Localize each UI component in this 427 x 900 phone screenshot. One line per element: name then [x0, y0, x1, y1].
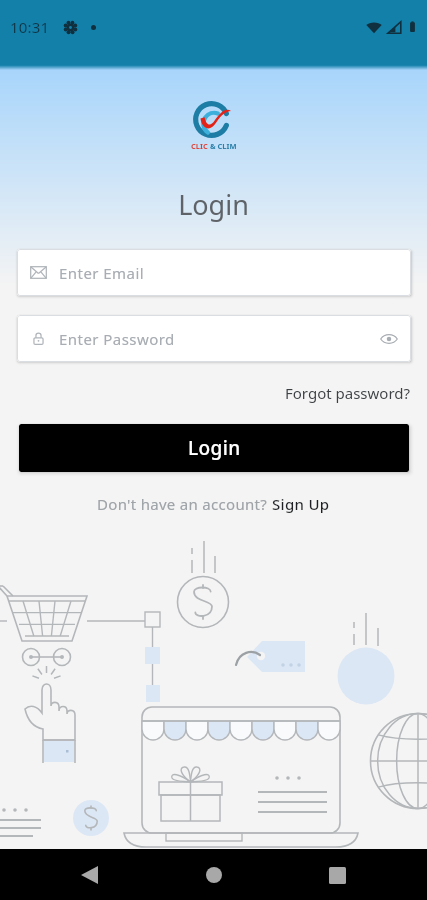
- button[interactable]: Sign Up: [272, 494, 330, 514]
- staticText: Login: [0, 186, 427, 223]
- staticText: Login: [188, 435, 241, 461]
- button[interactable]: Back: [67, 853, 111, 897]
- button[interactable]: Show password: [380, 333, 398, 345]
- button[interactable]: Recents: [315, 853, 359, 897]
- staticText: Enter Email: [59, 263, 145, 283]
- staticText: 10:31: [10, 17, 50, 37]
- staticText: Don't have an account?: [97, 494, 272, 514]
- staticText: & CLIM: [208, 141, 237, 151]
- button[interactable]: Enter Email: [17, 249, 411, 296]
- staticText: Enter Password: [59, 329, 175, 349]
- button[interactable]: Forgot password?: [285, 383, 411, 403]
- button[interactable]: Login: [19, 424, 409, 472]
- button[interactable]: Home: [192, 853, 236, 897]
- staticText: CLIC: [191, 141, 208, 151]
- button[interactable]: Enter Password: [17, 315, 411, 362]
